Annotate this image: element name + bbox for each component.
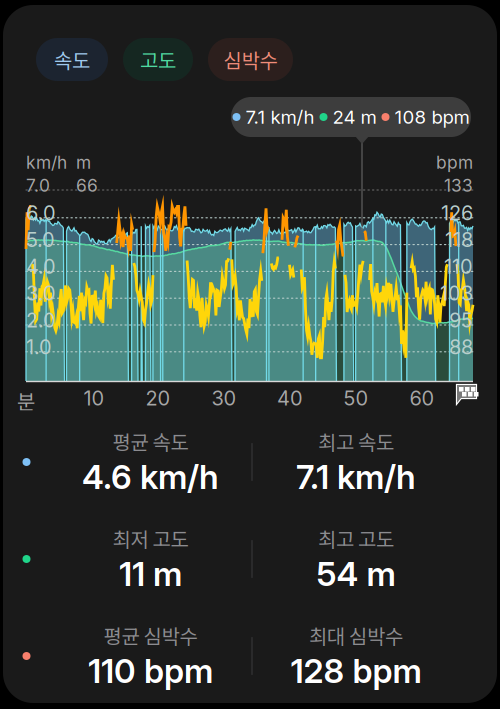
staticText: 24 m — [327, 106, 381, 128]
staticText: 최대 심박수 — [309, 621, 403, 650]
staticText: 54 m — [316, 554, 395, 594]
staticText: 88 — [449, 335, 473, 359]
staticText: 4.6 km/h — [82, 457, 219, 497]
staticText: 5.0 — [26, 228, 55, 252]
staticText: 7.0 — [26, 175, 50, 196]
staticText: 2.0 — [26, 308, 56, 332]
staticText: 126 — [441, 201, 473, 225]
staticText: 103 — [440, 281, 473, 305]
staticText: 고도 — [140, 45, 176, 74]
staticText: 평균 심박수 — [103, 621, 197, 650]
staticText: 128 bpm — [290, 651, 421, 691]
staticText: 110 — [444, 254, 473, 279]
staticText: 133 — [444, 175, 473, 196]
staticText: 최저 고도 — [112, 524, 188, 553]
staticText: 118 — [445, 228, 473, 252]
staticText: 95 — [449, 308, 473, 332]
staticText: 심박수 — [223, 45, 277, 74]
staticText: 11 m — [119, 554, 182, 594]
staticText: 30 — [211, 386, 236, 410]
staticText: 속도 — [54, 45, 90, 74]
staticText: 7.1 km/h — [240, 106, 319, 128]
staticText: 최고 고도 — [318, 524, 394, 553]
button[interactable]: 속도 — [36, 38, 108, 81]
staticText: 40 — [277, 386, 303, 410]
staticText: 4.0 — [26, 254, 56, 279]
staticText: 60 — [409, 386, 434, 410]
staticText: 50 — [343, 386, 368, 410]
staticText: 1.0 — [26, 335, 52, 359]
staticText: 최고 속도 — [318, 427, 394, 456]
staticText: bpm — [436, 152, 473, 173]
staticText: km/h — [26, 152, 67, 173]
staticText: 7.1 km/h — [296, 457, 416, 497]
staticText: 평균 속도 — [112, 427, 188, 456]
button[interactable]: 고도 — [123, 38, 193, 81]
staticText: 110 bpm — [88, 651, 213, 691]
staticText: 108 bpm — [389, 106, 469, 128]
staticText: m — [76, 152, 91, 173]
staticText: 6.0 — [26, 201, 56, 225]
staticText: 20 — [145, 386, 170, 410]
staticText: 분 — [17, 386, 35, 415]
button[interactable]: 심박수 — [208, 38, 293, 81]
staticText: 10 — [83, 386, 104, 410]
staticText: 3.0 — [26, 281, 56, 305]
staticText: 66 — [76, 175, 98, 196]
